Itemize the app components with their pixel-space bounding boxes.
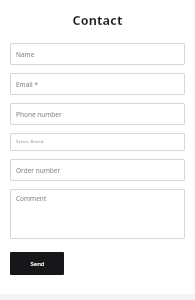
button[interactable]: Phone number bbox=[10, 103, 185, 125]
button[interactable]: Select Brand bbox=[10, 133, 185, 151]
staticText: Email * bbox=[16, 80, 38, 89]
staticText: Contact bbox=[72, 12, 123, 29]
staticText: Send bbox=[30, 260, 45, 268]
button[interactable]: Email * bbox=[10, 73, 185, 95]
staticText: Phone number bbox=[16, 110, 62, 119]
staticText: Comment bbox=[16, 194, 47, 203]
button[interactable]: Send bbox=[10, 252, 64, 275]
button[interactable]: Comment bbox=[10, 189, 185, 239]
staticText: Select Brand bbox=[16, 139, 44, 145]
staticText: Name bbox=[16, 50, 35, 59]
staticText: Order number bbox=[16, 166, 61, 175]
button[interactable]: Name bbox=[10, 43, 185, 65]
button[interactable]: Order number bbox=[10, 159, 185, 181]
